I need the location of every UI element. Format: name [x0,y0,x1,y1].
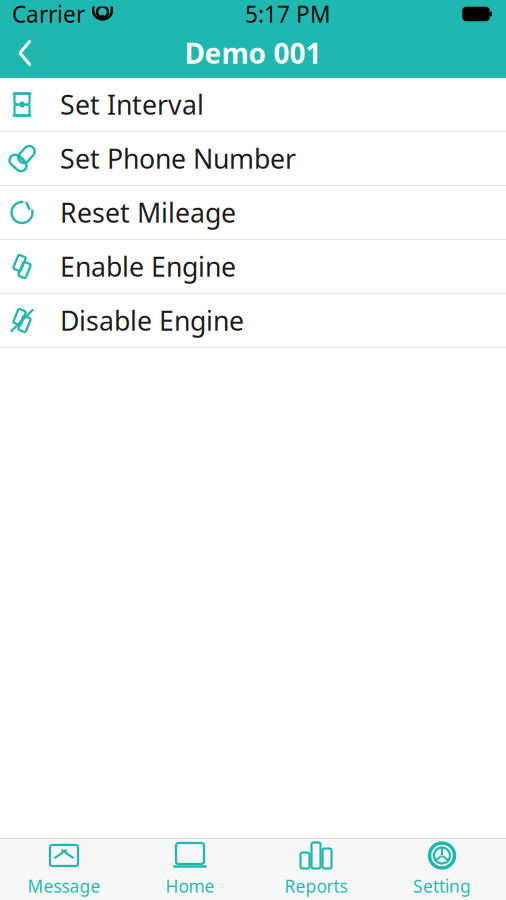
staticText: 5:17 PM [245,0,331,29]
button[interactable]: Set Phone Number [0,132,506,186]
button[interactable]: Home [127,839,253,900]
staticText: Set Interval [60,87,204,122]
button[interactable]: Back [0,28,50,78]
staticText: Carrier [12,0,85,29]
button[interactable]: Reports [253,839,379,900]
staticText: Message [27,874,100,897]
staticText: Disable Engine [60,303,244,338]
staticText: Home [165,874,214,897]
staticText: Demo 001 [184,34,321,72]
button[interactable]: Disable Engine [0,294,506,348]
button[interactable]: Reset Mileage [0,186,506,240]
staticText: Reset Mileage [60,195,236,230]
staticText: Setting [413,874,471,897]
button[interactable]: Setting [379,839,505,900]
button[interactable]: Set Interval [0,78,506,132]
staticText: Set Phone Number [60,141,296,176]
staticText: Enable Engine [60,249,236,284]
button[interactable]: Message [1,839,127,900]
staticText: Reports [284,874,347,897]
button[interactable]: Enable Engine [0,240,506,294]
